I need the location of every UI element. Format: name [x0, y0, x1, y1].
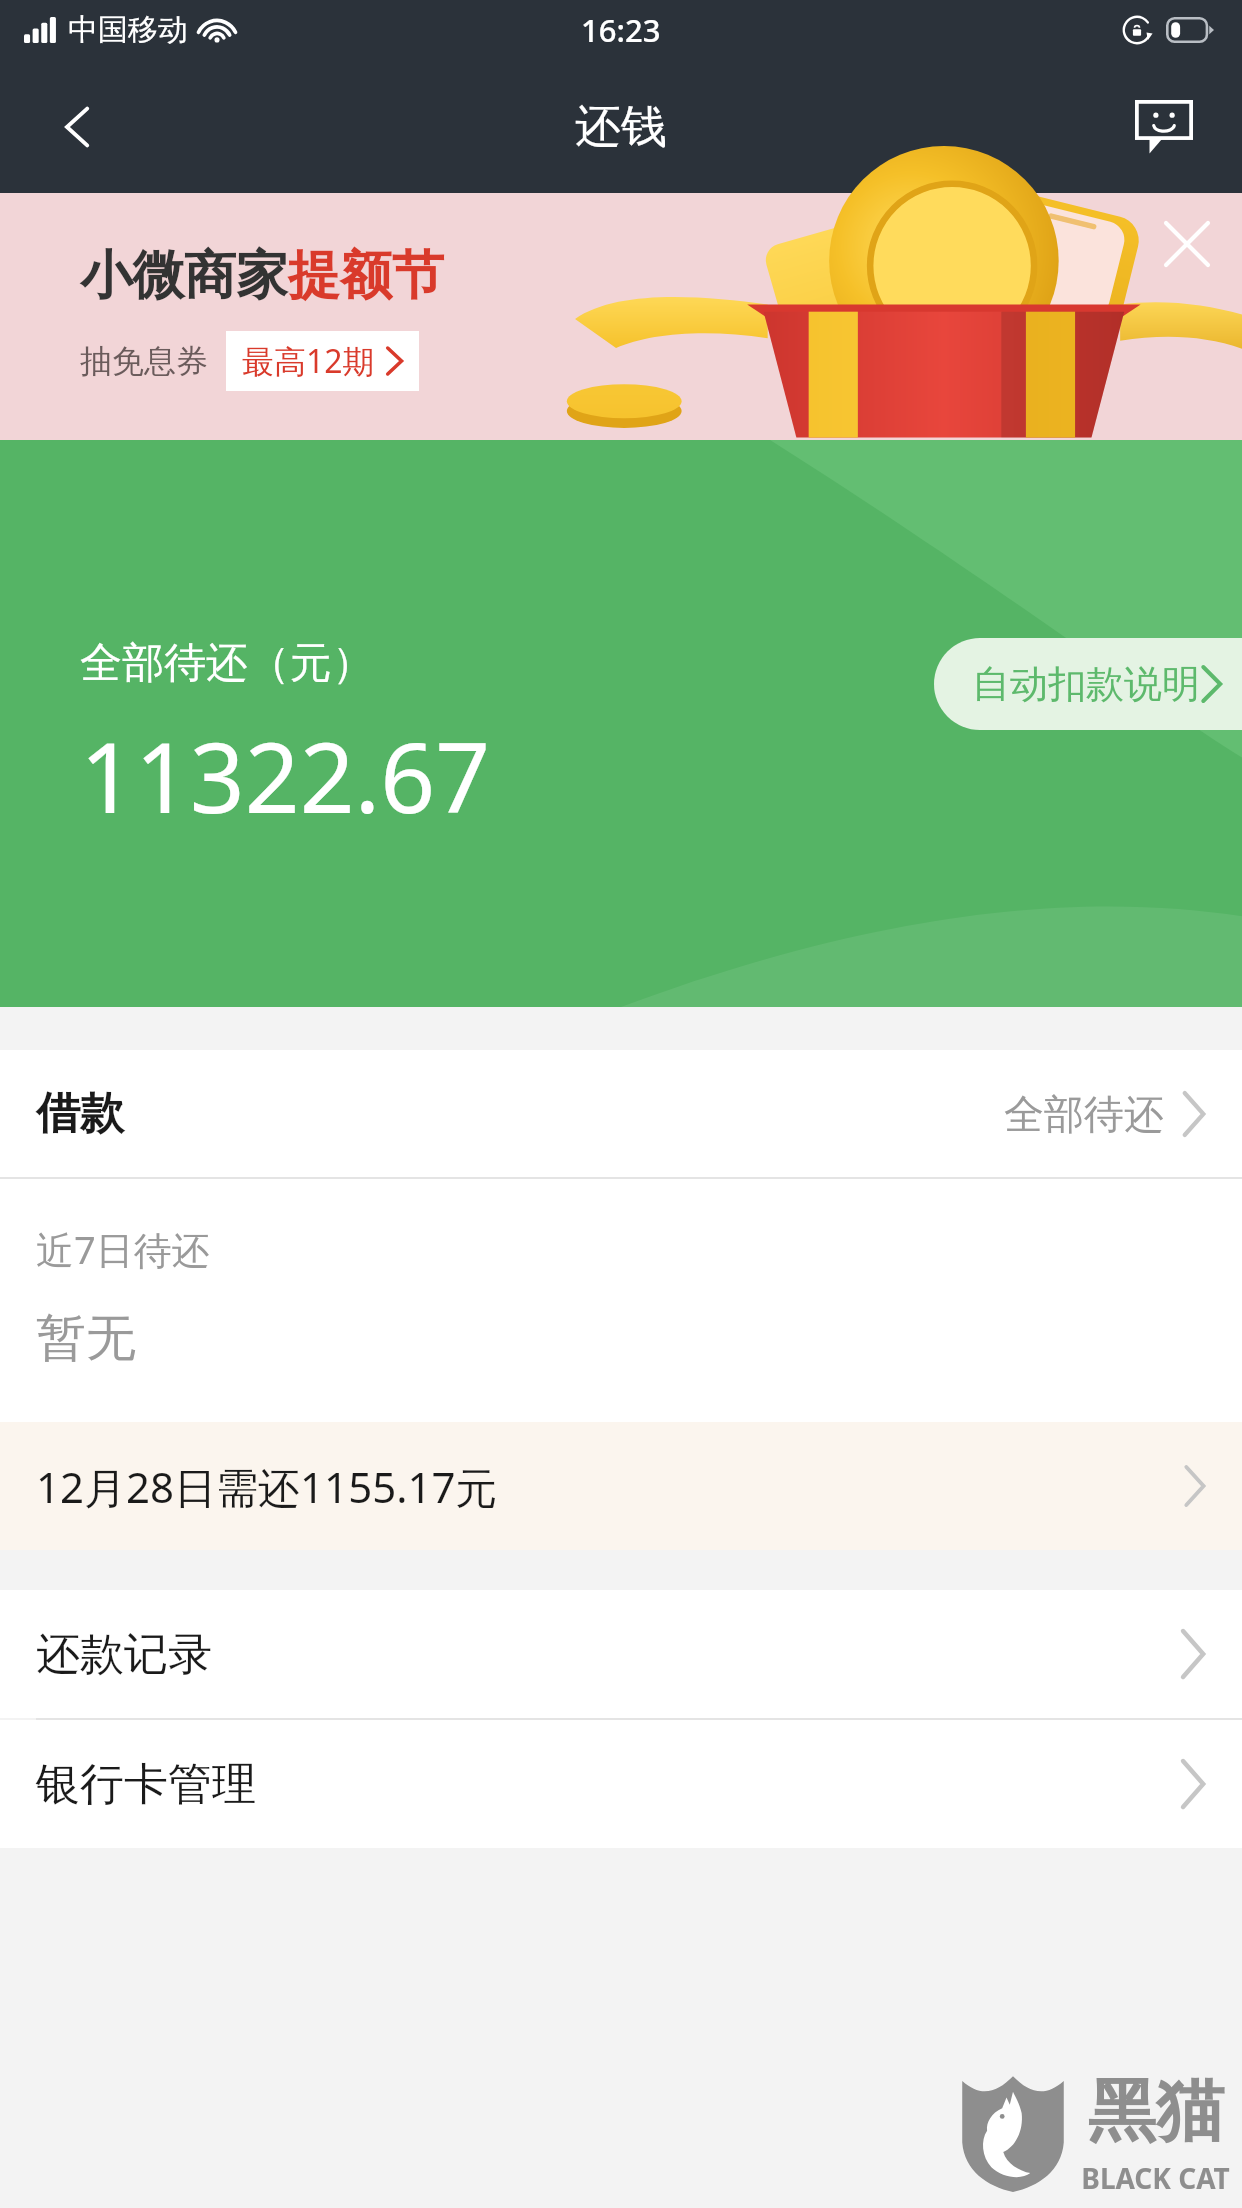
staticText: 小微商家 — [80, 243, 288, 309]
staticText: 还钱 — [575, 98, 667, 156]
button[interactable]: 还款记录 — [0, 1590, 1242, 1718]
button[interactable]: Close banner — [1146, 203, 1228, 285]
staticText: 全部待还（元） — [80, 637, 374, 690]
staticText: 银行卡管理 — [36, 1757, 256, 1812]
button[interactable]: Customer service chat — [1114, 77, 1214, 177]
button[interactable]: 最高12期 — [242, 339, 403, 383]
staticText: 16:23 — [581, 9, 661, 51]
button[interactable]: 银行卡管理 — [0, 1720, 1242, 1848]
button[interactable]: 借款 — [0, 1050, 1242, 1177]
staticText: 12月28日需还1155.17元 — [36, 1458, 498, 1515]
staticText: 11322.67 — [80, 710, 491, 841]
button[interactable]: 自动扣款说明 — [934, 638, 1242, 730]
staticText: BLACK CAT — [1081, 2159, 1230, 2197]
staticText: 还款记录 — [36, 1627, 212, 1682]
staticText: 自动扣款说明 — [972, 660, 1200, 708]
staticText: 近7日待还 — [36, 1223, 210, 1275]
staticText: 全部待还 — [1004, 1089, 1164, 1139]
staticText: 最高12期 — [242, 339, 375, 383]
button[interactable]: Back — [30, 79, 126, 175]
staticText: 中国移动 — [68, 11, 188, 49]
button[interactable]: 小微商家 — [0, 193, 1242, 440]
button[interactable]: 12月28日需还1155.17元 — [0, 1422, 1242, 1550]
staticText: 借款 — [36, 1086, 124, 1141]
staticText: 黑猫 — [1088, 2069, 1224, 2155]
staticText: 暂无 — [36, 1307, 136, 1370]
staticText: 抽免息券 — [80, 341, 208, 381]
staticText: 提额节 — [288, 243, 444, 309]
